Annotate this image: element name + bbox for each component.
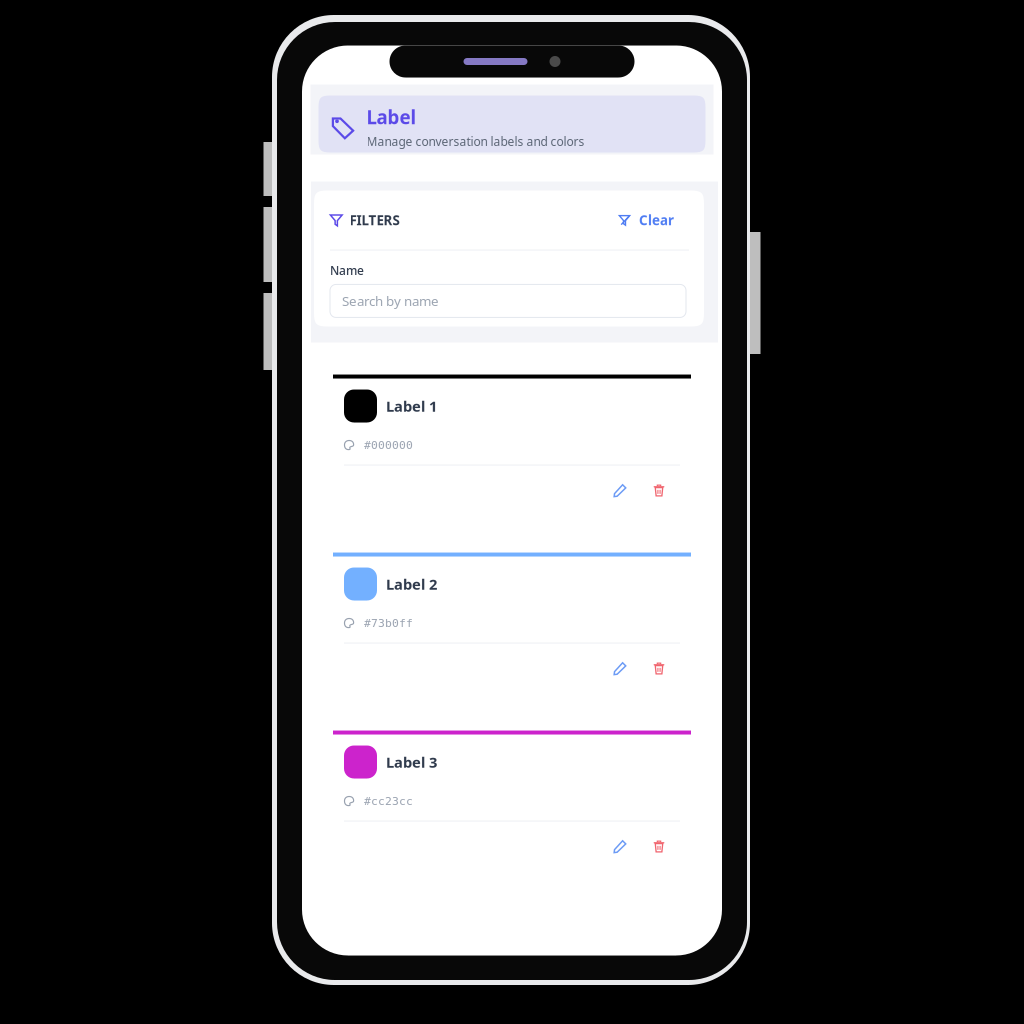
staticText: Label (366, 105, 416, 129)
button[interactable]: Edit label (608, 659, 632, 677)
staticText: Label 3 (386, 752, 437, 772)
button[interactable]: Clear (619, 211, 689, 229)
staticText: Manage conversation labels and colors (366, 133, 584, 149)
staticText: Name (330, 262, 364, 278)
staticText: Search by name (342, 292, 439, 310)
button[interactable]: Edit label (608, 481, 632, 499)
button[interactable]: Delete label (647, 659, 671, 677)
staticText: Clear (639, 211, 674, 229)
staticText: FILTERS (349, 211, 399, 229)
button[interactable]: Edit label (608, 837, 632, 855)
button[interactable]: Search by name (330, 284, 686, 317)
staticText: #cc23cc (364, 794, 413, 808)
staticText: Label 2 (386, 574, 437, 594)
staticText: #73b0ff (364, 616, 413, 630)
staticText: #000000 (364, 438, 413, 452)
staticText: Label 1 (386, 396, 437, 416)
button[interactable]: Delete label (647, 481, 671, 499)
button[interactable]: Delete label (647, 837, 671, 855)
